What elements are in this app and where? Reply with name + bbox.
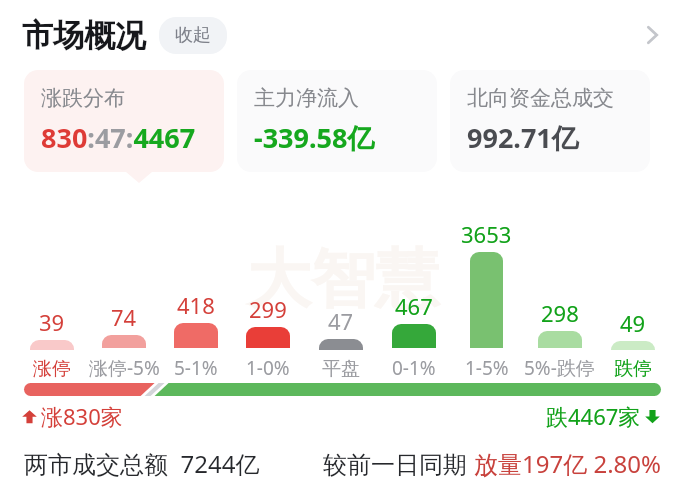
staticText: 主力净流入: [254, 85, 359, 111]
button[interactable]: 主力净流入: [237, 70, 437, 172]
button[interactable]: 收起: [159, 17, 227, 54]
button[interactable]: 涨跌分布: [24, 70, 224, 172]
button[interactable]: 298: [523, 298, 596, 381]
staticText: 74: [111, 302, 137, 332]
button[interactable]: 418: [160, 290, 232, 381]
staticText: 5%-跌停: [524, 355, 595, 381]
staticText: 5-1%: [174, 355, 218, 381]
button[interactable]: 467: [377, 291, 450, 381]
button[interactable]: 北向资金总成交: [450, 70, 650, 172]
staticText: 3653: [461, 219, 512, 249]
staticText: 467: [395, 291, 433, 321]
staticText: 1-0%: [246, 355, 290, 381]
staticText: 大智慧: [247, 239, 439, 320]
staticText: 收起: [175, 24, 211, 47]
staticText: 市场概况: [22, 16, 146, 55]
staticText: 1-5%: [465, 355, 509, 381]
staticText: 涨停-5%: [89, 355, 160, 381]
staticText: 北向资金总成交: [467, 85, 614, 111]
staticText: 299: [249, 294, 287, 324]
staticText: 49: [620, 308, 646, 338]
staticText: 放量197亿 2.80%: [474, 447, 661, 480]
staticText: 涨跌分布: [41, 85, 125, 111]
staticText: 跌4467家: [546, 401, 641, 431]
staticText: 0-1%: [392, 355, 436, 381]
staticText: 平盘: [322, 357, 360, 381]
staticText: 较前一日同期: [323, 447, 474, 480]
staticText: 830:47:4467: [41, 119, 196, 156]
button[interactable]: 39: [16, 307, 88, 381]
button[interactable]: 47: [304, 306, 377, 381]
staticText: 涨830家: [41, 401, 123, 431]
staticText: 298: [541, 298, 579, 328]
staticText: 418: [177, 290, 215, 320]
staticText: 涨停: [33, 357, 71, 381]
staticText: -339.58亿: [254, 119, 375, 156]
staticText: 两市成交总额 7244亿: [24, 447, 260, 480]
button[interactable]: 49: [596, 308, 669, 381]
staticText: 39: [39, 307, 65, 337]
staticText: 992.71亿: [467, 119, 579, 156]
button[interactable]: 74: [88, 302, 160, 381]
button[interactable]: 299: [232, 294, 304, 381]
staticText: 47: [328, 306, 354, 336]
staticText: 跌停: [614, 357, 652, 381]
button[interactable]: 查看更多: [627, 10, 677, 60]
button[interactable]: 3653: [450, 219, 523, 381]
